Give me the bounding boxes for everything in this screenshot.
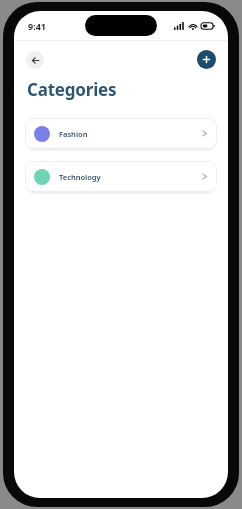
button[interactable]: Back [26,51,44,69]
staticText: Categories [27,78,117,101]
staticText: 9:41 [28,20,46,32]
staticText: Technology [59,172,101,182]
staticText: Fashion [59,129,88,139]
button[interactable]: Technology [25,161,217,192]
button[interactable]: Fashion [25,118,217,149]
button[interactable]: Add category [197,50,216,69]
